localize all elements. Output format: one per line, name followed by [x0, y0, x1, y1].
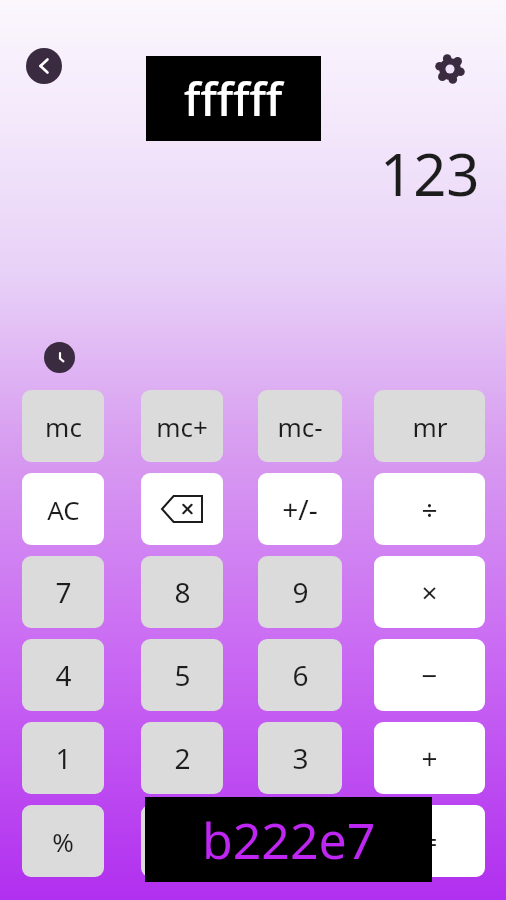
button[interactable]: 8 — [141, 556, 223, 628]
staticText: ffffff — [184, 67, 283, 130]
staticText: 4 — [55, 656, 72, 694]
staticText: − — [421, 656, 438, 694]
button[interactable]: − — [374, 639, 485, 711]
button[interactable]: ÷ — [374, 473, 485, 545]
staticText: = — [421, 822, 438, 860]
button[interactable]: 5 — [141, 639, 223, 711]
button[interactable]: 6 — [258, 639, 342, 711]
staticText: mr — [412, 409, 448, 444]
button[interactable]: Settings — [431, 50, 469, 88]
button[interactable]: × — [374, 556, 485, 628]
staticText: % — [52, 824, 74, 859]
staticText: b222e7 — [202, 806, 376, 874]
staticText: +/- — [282, 490, 318, 528]
button[interactable]: 3 — [258, 722, 342, 794]
button[interactable]: 2 — [141, 722, 223, 794]
staticText: 123 — [380, 134, 480, 213]
button[interactable]: = — [374, 805, 485, 877]
button[interactable]: mr — [374, 390, 485, 462]
staticText: 9 — [292, 573, 309, 611]
staticText: 8 — [174, 573, 191, 611]
staticText: mc — [45, 409, 82, 444]
button[interactable]: mc- — [258, 390, 342, 462]
button[interactable]: + — [374, 722, 485, 794]
staticText: 5 — [174, 656, 191, 694]
staticText: 1 — [55, 739, 72, 777]
staticText: AC — [47, 492, 80, 527]
button[interactable]: Backspace — [141, 473, 223, 545]
staticText: . — [296, 822, 304, 860]
staticText: ÷ — [421, 490, 438, 528]
button[interactable]: mc — [22, 390, 104, 462]
button[interactable]: 9 — [258, 556, 342, 628]
button[interactable]: Back — [26, 48, 62, 84]
staticText: + — [421, 739, 438, 777]
button[interactable]: . — [258, 805, 342, 877]
staticText: 2 — [174, 739, 191, 777]
button[interactable]: % — [22, 805, 104, 877]
button[interactable]: 0 — [141, 805, 223, 877]
staticText: mc+ — [156, 409, 208, 444]
staticText: mc- — [277, 409, 323, 444]
button[interactable]: History — [44, 342, 75, 373]
button[interactable]: 1 — [22, 722, 104, 794]
button[interactable]: 4 — [22, 639, 104, 711]
button[interactable]: 7 — [22, 556, 104, 628]
staticText: 6 — [292, 656, 309, 694]
staticText: 7 — [55, 573, 72, 611]
button[interactable]: AC — [22, 473, 104, 545]
button[interactable]: +/- — [258, 473, 342, 545]
staticText: × — [421, 573, 438, 611]
button[interactable]: mc+ — [141, 390, 223, 462]
staticText: 3 — [292, 739, 309, 777]
